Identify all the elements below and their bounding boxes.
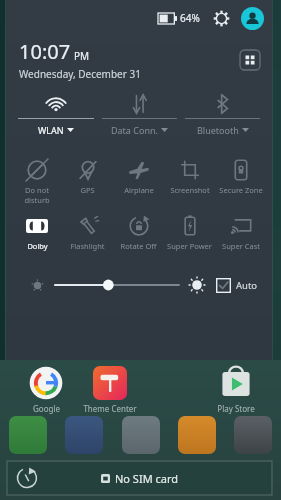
staticText: Super Cast xyxy=(222,241,260,251)
staticText: Data Conn. xyxy=(111,124,158,136)
button[interactable]: User xyxy=(241,7,264,30)
button[interactable]: Auto xyxy=(216,278,258,293)
button[interactable]: Apps xyxy=(122,416,160,454)
button[interactable]: Contacts xyxy=(65,416,103,454)
button[interactable]: Flashlight xyxy=(62,213,113,261)
button[interactable]: Secure Zone xyxy=(215,157,266,205)
button[interactable]: Settings xyxy=(210,7,232,29)
staticText: Flashlight xyxy=(70,241,105,251)
staticText: PM xyxy=(74,49,90,63)
button[interactable]: Phone xyxy=(9,416,47,454)
button[interactable]: Bluetooth xyxy=(181,89,264,147)
staticText: Play Store xyxy=(217,403,255,414)
button[interactable]: Google xyxy=(14,366,78,414)
staticText: Theme Center xyxy=(83,403,137,414)
button[interactable]: Screenshot xyxy=(164,157,215,205)
button[interactable]: No SIM card xyxy=(6,460,273,496)
button[interactable]: WLAN xyxy=(14,89,98,147)
button[interactable]: Brightness xyxy=(55,276,179,294)
staticText: No SIM card xyxy=(115,471,179,486)
staticText: Dolby xyxy=(27,241,48,251)
staticText: Do not disturb xyxy=(12,185,62,205)
button[interactable]: Airplane xyxy=(113,157,164,205)
staticText: Super Power xyxy=(167,241,212,251)
button[interactable]: Rotate Off xyxy=(113,213,164,261)
button[interactable]: Dolby xyxy=(12,213,62,261)
staticText: Auto xyxy=(236,279,258,292)
staticText: Screenshot xyxy=(170,185,210,195)
button[interactable]: Data Conn. xyxy=(98,89,181,147)
staticText: Secure Zone xyxy=(219,185,263,195)
button[interactable]: Messaging xyxy=(178,416,216,454)
staticText: Google xyxy=(33,403,60,414)
button[interactable]: Theme Center xyxy=(78,366,141,414)
other: Refresh xyxy=(16,467,38,489)
button[interactable]: Super Power xyxy=(164,213,215,261)
staticText: Airplane xyxy=(124,185,154,195)
button[interactable]: GPS xyxy=(62,157,113,205)
staticText: 10:07 xyxy=(19,38,71,65)
staticText: Wednesday, December 31 xyxy=(19,67,141,81)
button[interactable]: Do not disturb xyxy=(12,157,62,205)
button[interactable]: Super Cast xyxy=(215,213,266,261)
button[interactable]: Camera xyxy=(234,416,272,454)
button[interactable]: Play Store xyxy=(204,366,267,414)
staticText: WLAN xyxy=(38,124,64,136)
staticText: Bluetooth xyxy=(197,124,239,136)
button[interactable]: Edit tiles xyxy=(237,47,263,73)
staticText: 64% xyxy=(180,11,200,25)
staticText: GPS xyxy=(80,185,95,195)
staticText: Rotate Off xyxy=(120,241,157,251)
